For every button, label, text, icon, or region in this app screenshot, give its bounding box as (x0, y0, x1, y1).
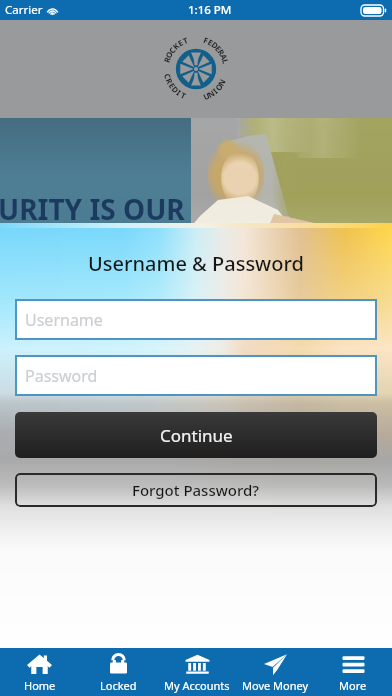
button[interactable]: More (314, 648, 392, 696)
staticText: 1:16 PM (188, 2, 232, 18)
button[interactable]: Locked (79, 648, 158, 696)
staticText: Home (24, 678, 56, 693)
staticText: Username & Password (0, 250, 392, 277)
button[interactable]: My Accounts (158, 648, 236, 696)
staticText: Username (25, 309, 103, 331)
staticText: More (339, 678, 367, 693)
staticText: Carrier (5, 2, 43, 18)
staticText: My Accounts (164, 678, 230, 693)
button[interactable]: Home (0, 648, 79, 696)
button[interactable]: Forgot Password? (15, 473, 377, 507)
button[interactable]: Username (15, 299, 377, 340)
staticText: Locked (100, 678, 137, 693)
staticText: URITY IS OUR (0, 190, 185, 228)
staticText: Continue (160, 424, 233, 447)
staticText: Password (25, 365, 98, 387)
button[interactable]: Continue (15, 412, 377, 458)
staticText: Forgot Password? (132, 480, 260, 500)
button[interactable]: Password (15, 355, 377, 396)
staticText: Move Money (242, 678, 309, 693)
button[interactable]: Move Money (236, 648, 314, 696)
